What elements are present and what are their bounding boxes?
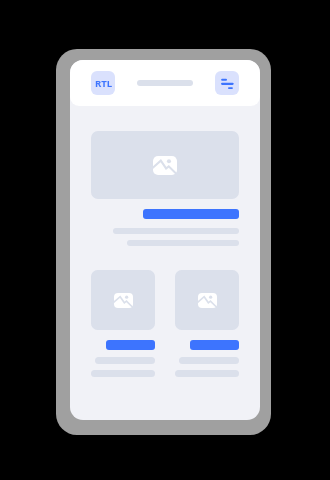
staticText: RTL — [95, 77, 112, 90]
button[interactable] — [91, 131, 239, 199]
button[interactable] — [175, 270, 239, 377]
button[interactable]: Menu — [215, 71, 239, 95]
button[interactable] — [91, 270, 155, 377]
button[interactable]: RTL — [91, 71, 115, 95]
